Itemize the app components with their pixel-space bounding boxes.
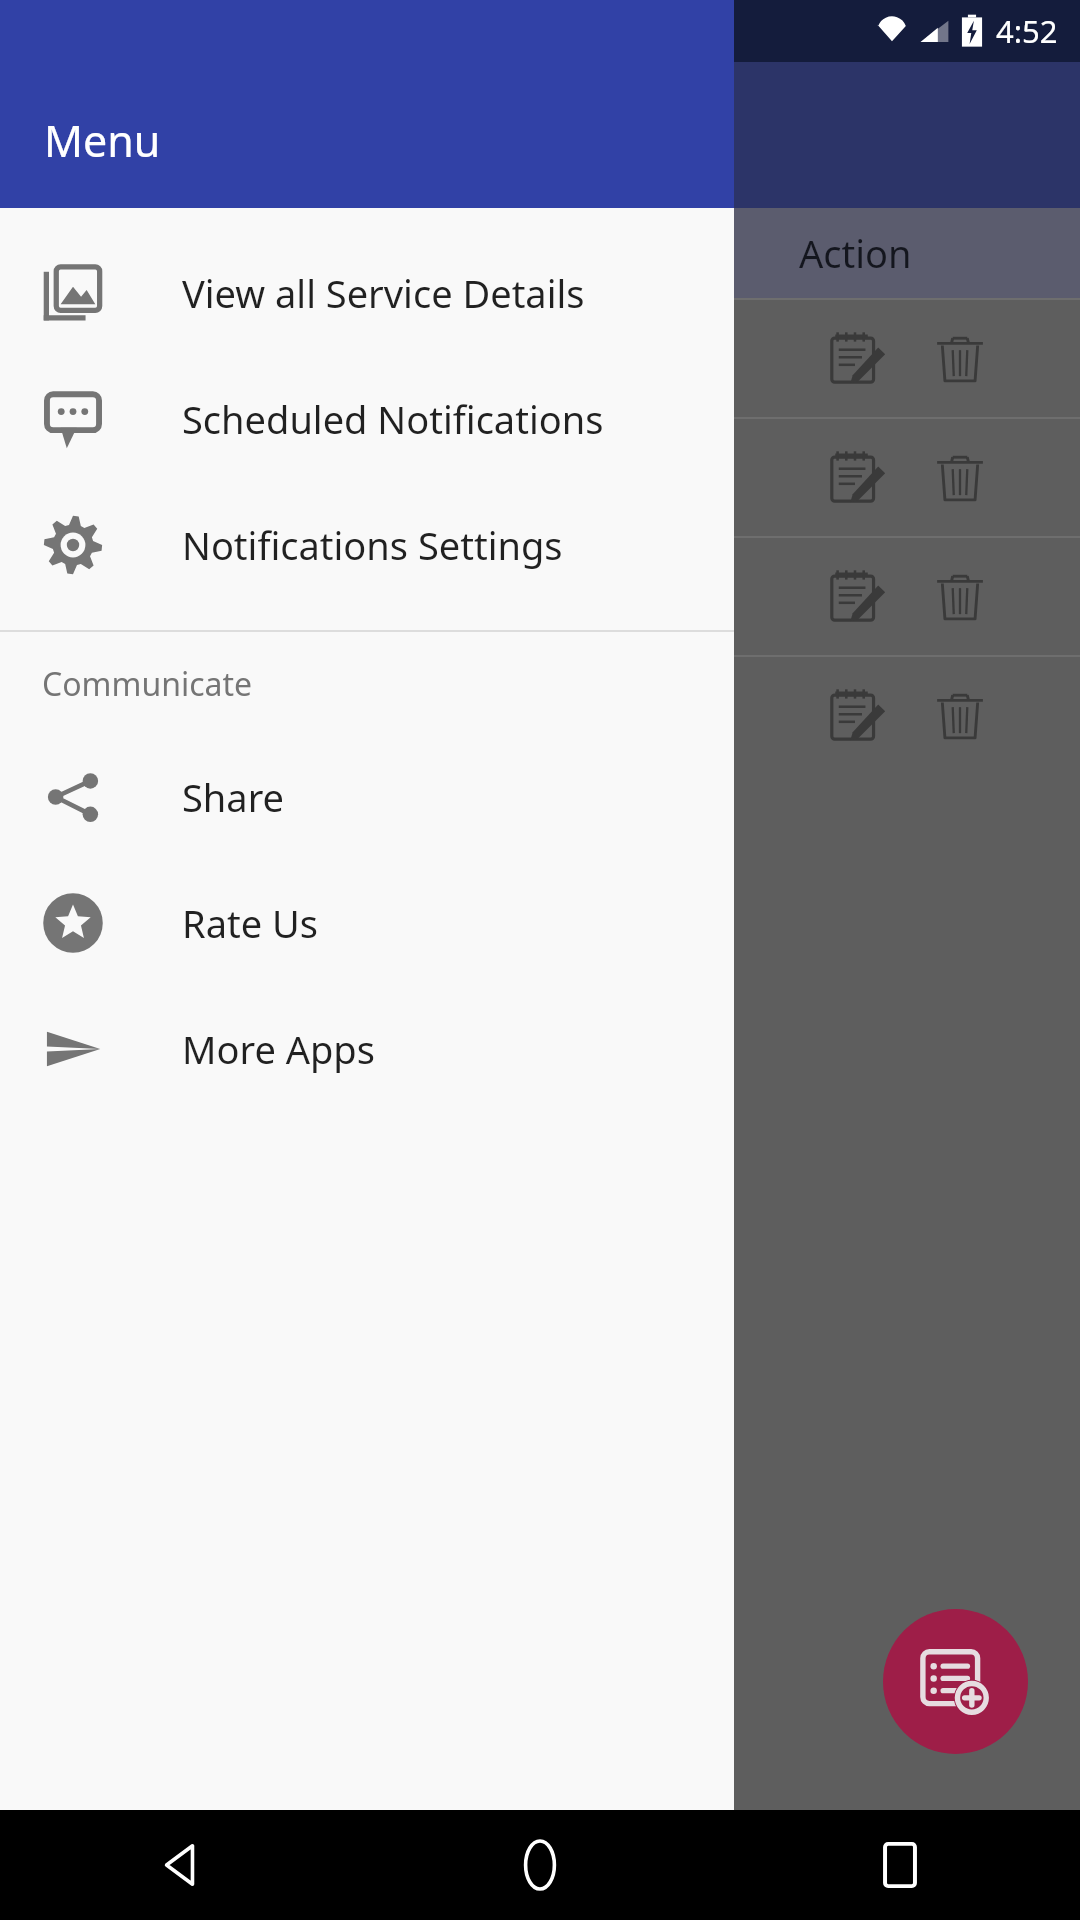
staticText: 4:52 bbox=[996, 10, 1058, 52]
button[interactable]: Home bbox=[360, 1810, 720, 1920]
staticText: Scheduled Notifications bbox=[182, 393, 604, 445]
button[interactable]: Share bbox=[0, 734, 734, 860]
staticText: Share bbox=[182, 771, 285, 823]
button[interactable]: Add service bbox=[883, 1609, 1028, 1754]
button[interactable]: Back bbox=[0, 1810, 360, 1920]
button[interactable]: View all Service Details bbox=[0, 230, 734, 356]
staticText: Menu bbox=[44, 111, 161, 170]
button[interactable]: Rate Us bbox=[0, 860, 734, 986]
button[interactable]: Notifications Settings bbox=[0, 482, 734, 608]
button[interactable]: Recents bbox=[720, 1810, 1080, 1920]
staticText: Action bbox=[799, 227, 912, 279]
staticText: More Apps bbox=[182, 1023, 375, 1075]
button[interactable]: More Apps bbox=[0, 986, 734, 1112]
staticText: Communicate bbox=[42, 662, 253, 706]
staticText: Rate Us bbox=[182, 897, 318, 949]
staticText: Notifications Settings bbox=[182, 519, 563, 571]
button[interactable]: Scheduled Notifications bbox=[0, 356, 734, 482]
staticText: View all Service Details bbox=[182, 267, 585, 319]
